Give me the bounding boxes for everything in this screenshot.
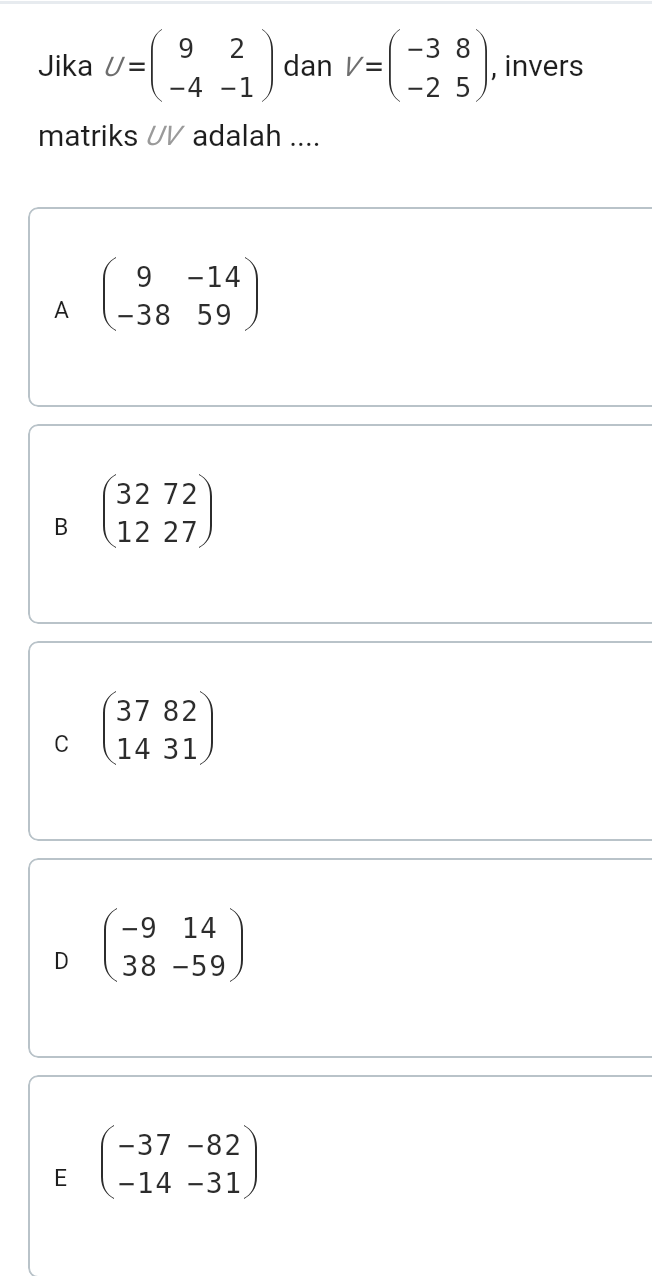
staticText: = [128,48,147,83]
button[interactable]: E [28,1075,652,1276]
staticText: −82 [145,1129,285,1162]
staticText: C [54,731,69,758]
staticText: −59 [130,950,270,983]
staticText: Jika [38,48,94,83]
staticText: A [54,297,70,324]
staticText: 14 [64,733,204,766]
staticText: adalah .... [192,118,321,153]
staticText: 5 [394,72,534,103]
staticText: B [54,514,69,541]
staticText: −1 [168,72,308,103]
staticText: −2 [355,72,495,103]
button[interactable]: C [28,641,652,841]
staticText: 32 [64,478,204,511]
staticText: −4 [117,72,257,103]
staticText: −38 [75,299,215,332]
staticText: = [365,48,384,83]
staticText: 27 [111,516,251,549]
button[interactable]: B [28,424,652,624]
staticText: −14 [145,261,285,294]
staticText: D [54,948,70,975]
staticText: −14 [76,1167,216,1200]
staticText: 38 [70,950,210,983]
staticText: 9 [117,33,257,64]
staticText: , invers [491,48,585,83]
staticText: −37 [76,1129,216,1162]
staticText: U [103,51,120,83]
staticText: −3 [355,33,495,64]
button[interactable]: A [28,207,652,407]
staticText: 31 [111,733,251,766]
staticText: 59 [145,299,285,332]
staticText: 12 [64,516,204,549]
staticText: dan [283,48,333,83]
staticText: 9 [75,261,215,294]
staticText: 8 [394,33,534,64]
staticText: −9 [70,912,210,945]
staticText: 72 [111,478,251,511]
staticText: 37 [64,695,204,728]
button[interactable]: D [28,858,652,1058]
staticText: 82 [111,695,251,728]
staticText: E [54,1165,68,1192]
staticText: −31 [145,1167,285,1200]
staticText: UV [145,120,179,152]
staticText: matriks [38,118,139,153]
staticText: 14 [130,912,270,945]
staticText: V [341,51,358,83]
staticText: 2 [168,33,308,64]
